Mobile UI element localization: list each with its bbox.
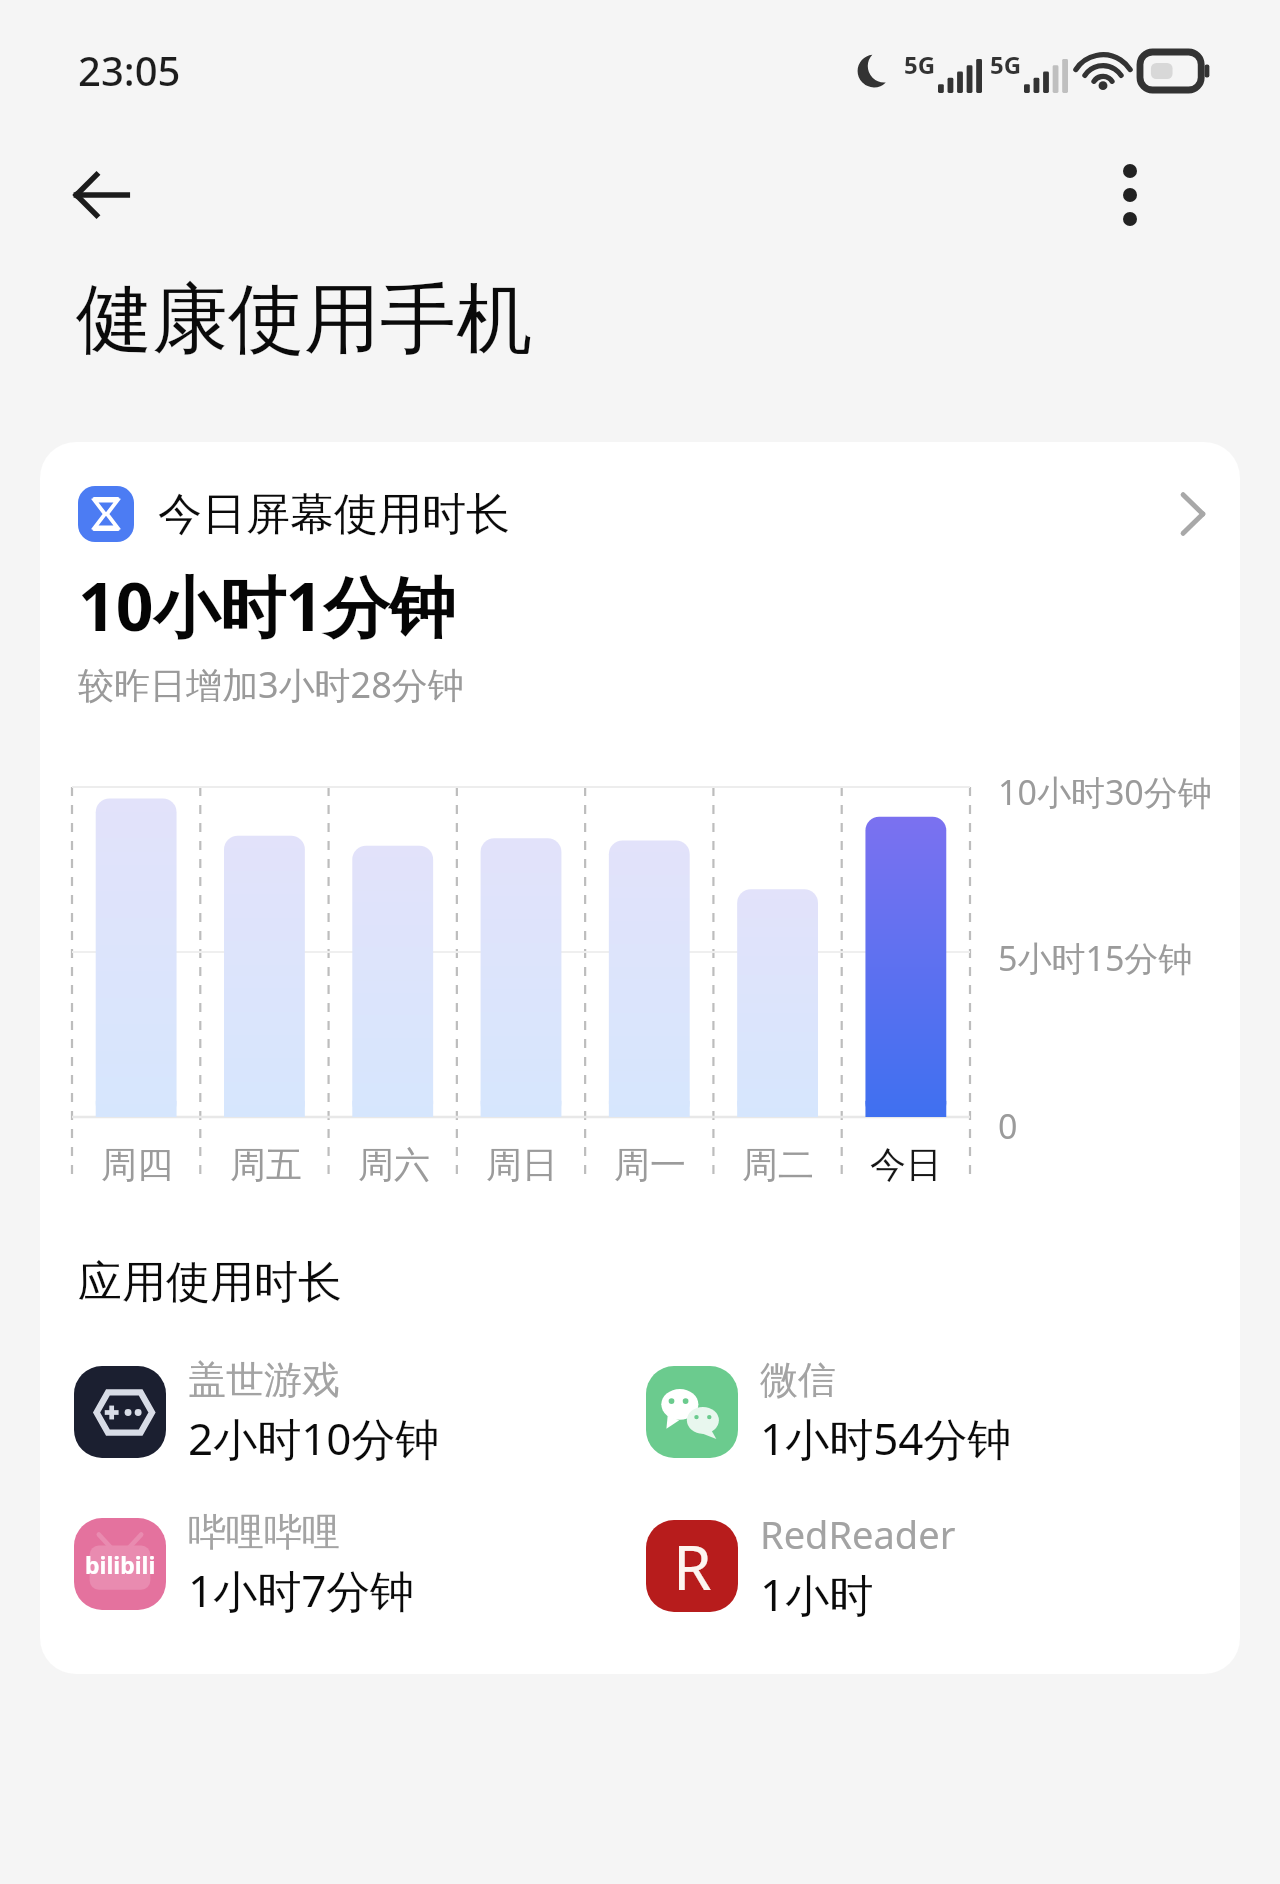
staticText: 盖世游戏 [188, 1356, 340, 1404]
staticText: 健康使用手机 [76, 272, 532, 368]
staticText: 1小时 [760, 1564, 874, 1624]
button[interactable]: R [646, 1502, 1206, 1630]
staticText: 周二 [742, 1142, 814, 1187]
staticText: 1小时7分钟 [188, 1560, 415, 1620]
staticText: 应用使用时长 [78, 1255, 342, 1310]
staticText: bilibili [85, 1549, 156, 1580]
staticText: 哔哩哔哩 [188, 1508, 340, 1556]
button[interactable]: bilibili [74, 1502, 634, 1626]
staticText: 周五 [230, 1142, 302, 1187]
button[interactable]: 今日屏幕使用时长 [40, 486, 1240, 542]
staticText: 周四 [101, 1142, 173, 1187]
staticText: 5小时15分钟 [998, 935, 1193, 981]
staticText: 10小时30分钟 [998, 769, 1212, 815]
button[interactable]: 盖世游戏 [74, 1350, 634, 1474]
staticText: 5G [990, 48, 1022, 81]
button[interactable]: 微信 [646, 1350, 1206, 1474]
staticText: 5G [904, 48, 936, 81]
staticText: 较昨日增加3小时28分钟 [78, 660, 464, 709]
staticText: 今日屏幕使用时长 [158, 487, 510, 542]
button[interactable]: More options [1090, 155, 1170, 235]
staticText: 周六 [358, 1142, 430, 1187]
staticText: RedReader [760, 1508, 956, 1560]
button[interactable]: Back [56, 150, 146, 240]
staticText: 今日 [870, 1142, 942, 1187]
staticText: 周一 [614, 1142, 686, 1187]
staticText: 0 [998, 1103, 1018, 1149]
staticText: 周日 [486, 1142, 558, 1187]
staticText: R [673, 1524, 712, 1608]
staticText: 1小时54分钟 [760, 1408, 1012, 1468]
staticText: 微信 [760, 1356, 836, 1404]
staticText: 10小时1分钟 [78, 560, 456, 650]
staticText: 23:05 [78, 43, 181, 97]
staticText: 2小时10分钟 [188, 1408, 440, 1468]
